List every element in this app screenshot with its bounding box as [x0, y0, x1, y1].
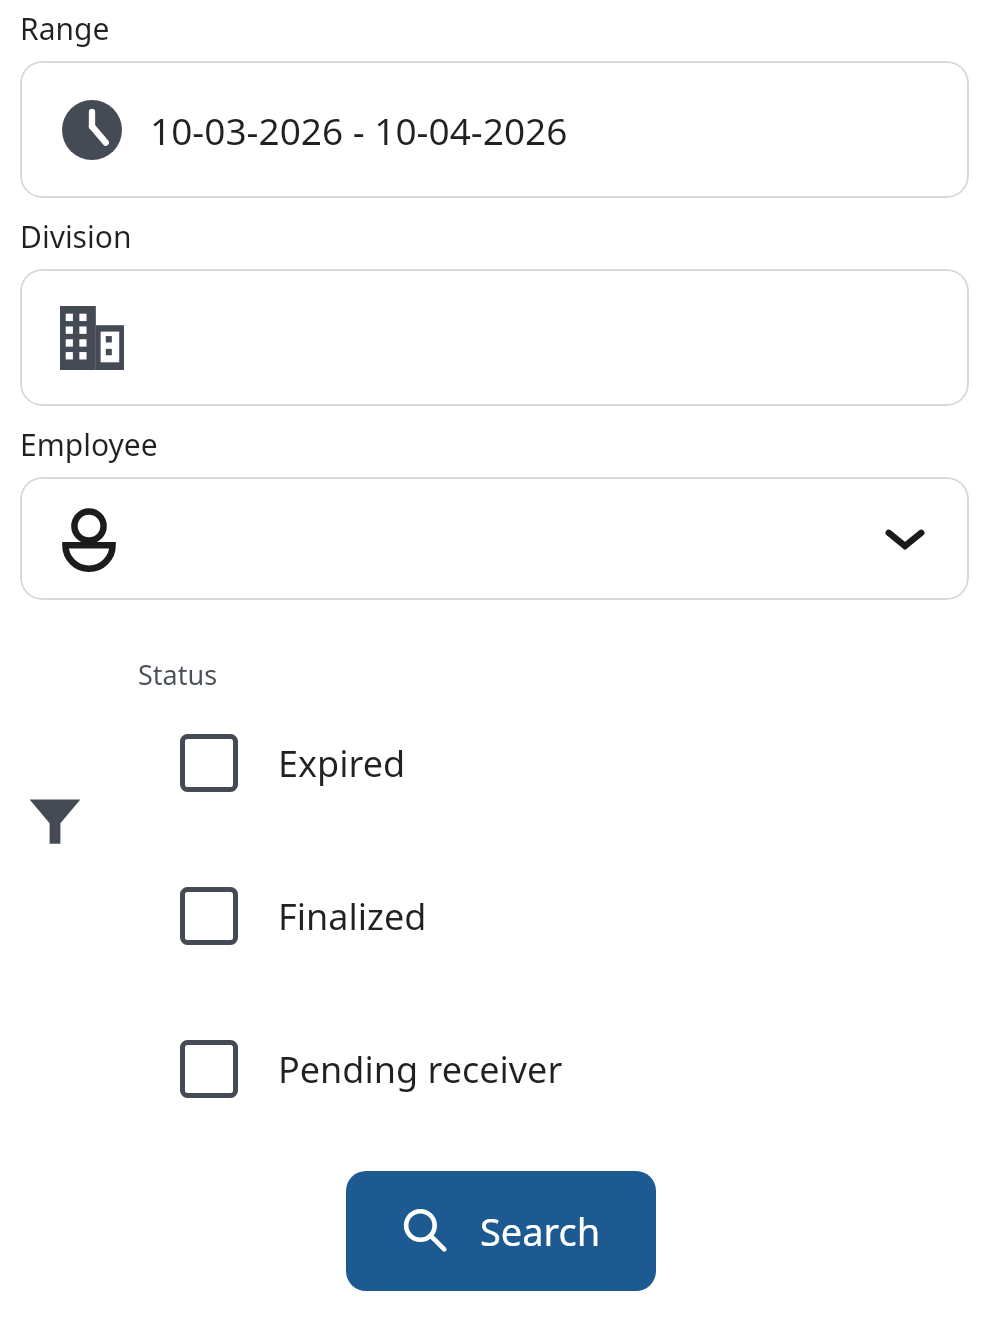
staticText: Division: [20, 216, 132, 257]
button[interactable]: Expired: [180, 731, 406, 795]
button[interactable]: Select division: [20, 269, 969, 406]
other: Filter: [28, 792, 82, 846]
staticText: Status: [138, 656, 218, 693]
staticText: Expired: [278, 739, 406, 788]
button[interactable]: Finalized: [180, 884, 427, 948]
button[interactable]: Search: [346, 1171, 656, 1291]
staticText: Employee: [20, 424, 158, 465]
staticText: Search: [480, 1205, 601, 1257]
button[interactable]: Pending receiver: [180, 1037, 563, 1101]
staticText: Finalized: [278, 892, 427, 941]
staticText: 10-03-2026 - 10-04-2026: [150, 105, 568, 155]
button[interactable]: Select employee: [20, 477, 969, 600]
staticText: Pending receiver: [278, 1045, 563, 1094]
staticText: Range: [20, 8, 110, 49]
button[interactable]: 10-03-2026 - 10-04-2026: [20, 61, 969, 198]
